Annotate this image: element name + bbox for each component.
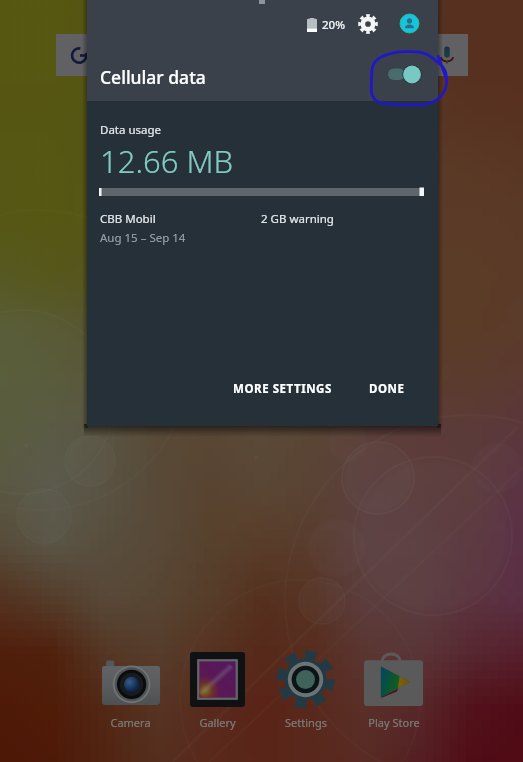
button[interactable]: Cellular data toggle [383,62,425,88]
button[interactable]: DONE [359,372,415,406]
button[interactable]: Voice search [430,38,462,72]
staticText: MORE SETTINGS [233,381,332,397]
button[interactable]: Settings [276,650,335,730]
staticText: Cellular data [100,65,206,89]
staticText: 20% [322,17,345,33]
staticText: Camera [110,715,151,730]
button[interactable]: Settings [358,14,378,34]
staticText: 12.66 MB [100,140,234,182]
staticText: CBB Mobil [100,211,156,227]
staticText: Data usage [100,122,162,138]
button[interactable]: Play Store [364,650,423,730]
staticText: 2 GB warning [261,211,334,227]
button[interactable]: Camera [101,650,160,730]
button[interactable]: Gallery [188,650,247,730]
staticText: Play Store [368,715,420,730]
staticText: DONE [369,381,405,397]
staticText: Settings [285,715,327,730]
button[interactable]: MORE SETTINGS [223,372,342,406]
button[interactable]: Account [400,14,419,33]
staticText: Gallery [199,715,236,730]
staticText: Aug 15 – Sep 14 [100,230,186,246]
button[interactable]: Google search [56,34,468,76]
